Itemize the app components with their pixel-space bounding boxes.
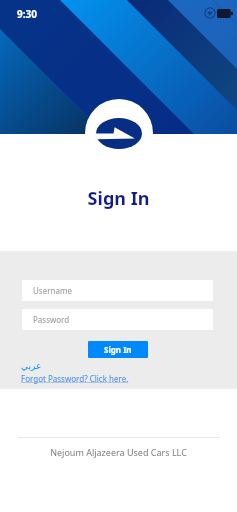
- staticText: Sign In: [0, 186, 237, 211]
- button[interactable]: Sign In: [88, 341, 148, 358]
- staticText: Password: [33, 314, 70, 325]
- staticText: Nejoum Aljazeera Used Cars LLC: [0, 446, 237, 458]
- staticText: Sign In: [104, 344, 132, 355]
- staticText: Forgot Password? Click here.: [21, 373, 129, 384]
- button[interactable]: Forgot Password? Click here.: [21, 373, 129, 384]
- button[interactable]: Username: [22, 280, 213, 301]
- staticText: Username: [33, 285, 72, 296]
- button[interactable]: Password: [22, 309, 213, 330]
- staticText: 9:30: [17, 7, 37, 21]
- button[interactable]: عربي: [21, 361, 42, 371]
- staticText: عربي: [21, 361, 42, 371]
